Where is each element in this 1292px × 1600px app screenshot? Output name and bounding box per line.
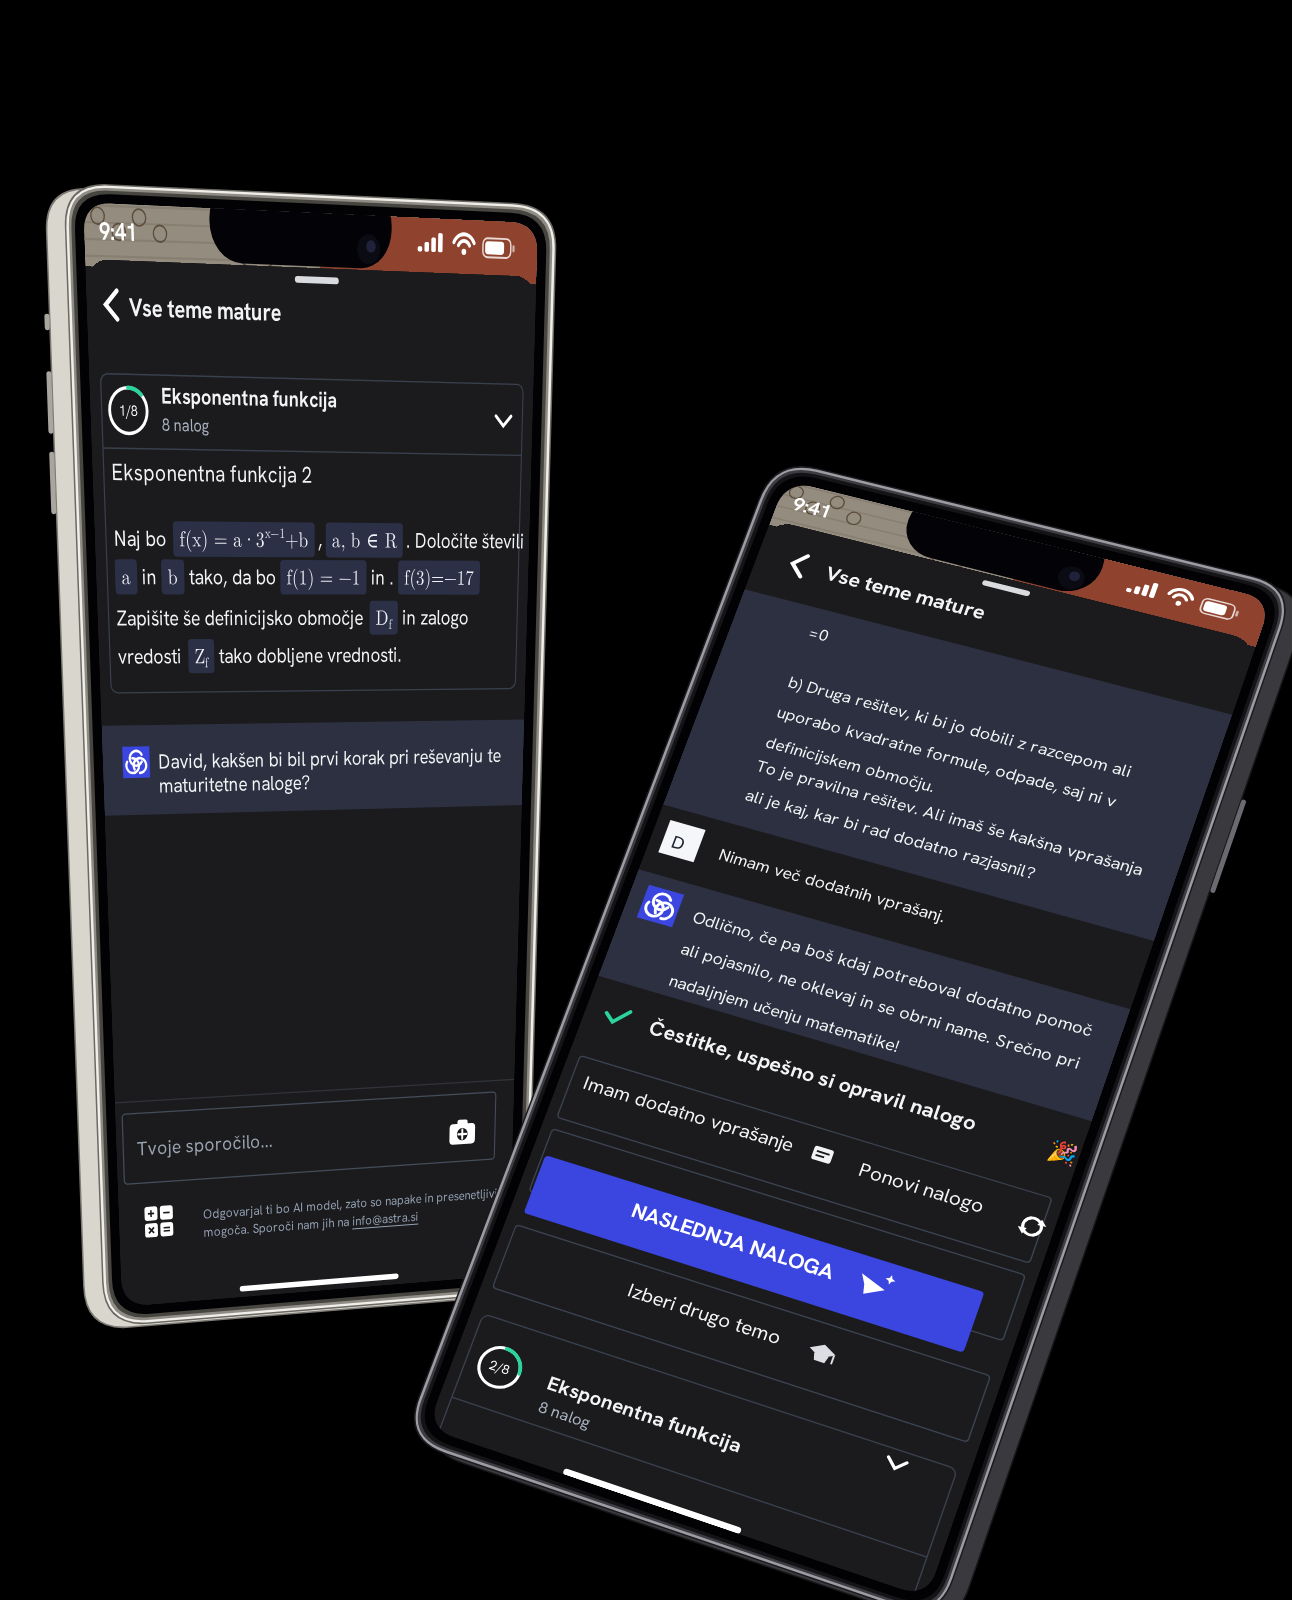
button[interactable]: Attach photo bbox=[440, 1110, 495, 1165]
button[interactable]: Ponovi nalogo bbox=[840, 1120, 1065, 1215]
button[interactable]: Expand topic bbox=[455, 390, 515, 450]
button[interactable]: Izberi drugo temo bbox=[540, 1240, 920, 1330]
button[interactable]: Back, Vse teme mature bbox=[96, 285, 146, 335]
button[interactable]: Tvoje sporočilo, message input bbox=[120, 1095, 500, 1180]
button[interactable]: Imam dodatno vprašanje bbox=[560, 1035, 1065, 1115]
button[interactable]: Eksponentna funkcija, 1 of 8 tasks, expa… bbox=[96, 360, 516, 455]
button[interactable]: NASLEDNJA NALOGA bbox=[555, 1140, 975, 1275]
button[interactable]: Back, Vse teme mature bbox=[790, 545, 838, 593]
button[interactable]: Calculator bbox=[140, 1190, 185, 1235]
button[interactable]: Eksponentna funkcija, 2 of 8 tasks bbox=[460, 1300, 930, 1410]
button[interactable]: Expand topic bbox=[855, 1405, 915, 1460]
